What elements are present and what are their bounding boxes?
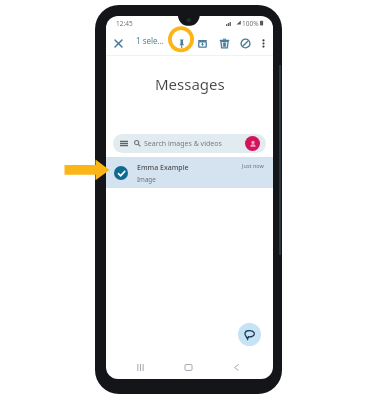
- button[interactable]: Block: [236, 34, 254, 52]
- button[interactable]: Account: [245, 136, 260, 151]
- staticText: Image: [137, 175, 156, 183]
- button[interactable]: Close selection: [109, 34, 127, 52]
- staticText: Just now: [242, 162, 264, 169]
- button[interactable]: Emma Example: [106, 157, 273, 188]
- button[interactable]: Search images & videos: [113, 134, 266, 153]
- staticText: Messages: [155, 74, 225, 94]
- staticText: 12:45: [116, 19, 133, 28]
- staticText: Emma Example: [137, 163, 189, 173]
- staticText: Search images & videos: [144, 139, 222, 149]
- button[interactable]: Back: [227, 358, 245, 376]
- button[interactable]: Recent apps: [131, 358, 149, 376]
- button[interactable]: Pin: [172, 34, 190, 52]
- button[interactable]: Start chat: [238, 323, 261, 346]
- button[interactable]: More options: [254, 34, 272, 52]
- staticText: 100%: [242, 19, 259, 28]
- staticText: 1 sele…: [136, 35, 164, 46]
- button[interactable]: Delete: [215, 34, 233, 52]
- button[interactable]: Archive: [193, 34, 211, 52]
- button[interactable]: Home: [179, 358, 197, 376]
